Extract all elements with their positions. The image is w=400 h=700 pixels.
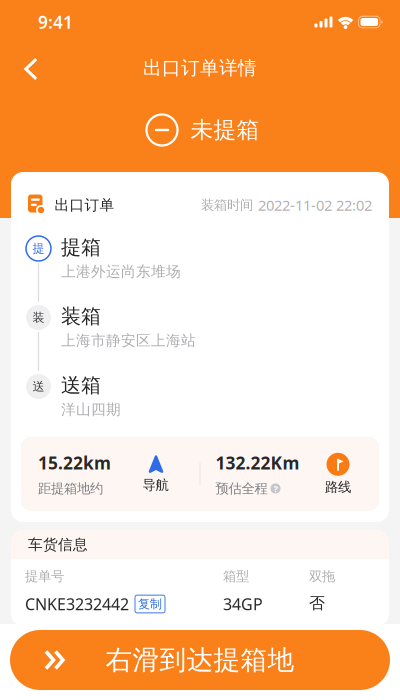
staticText: 双拖: [309, 568, 335, 584]
staticText: 车货信息: [28, 535, 88, 553]
staticText: 9:41: [38, 10, 73, 33]
staticText: 132.22Km: [215, 451, 299, 474]
staticText: 2022-11-02 22:02: [258, 195, 372, 215]
staticText: 上海市静安区上海站: [61, 332, 196, 350]
button[interactable]: 右滑到达提箱地: [10, 630, 390, 690]
staticText: 装箱时间: [201, 197, 253, 213]
staticText: 出口订单详情: [143, 56, 257, 79]
staticText: 导航: [142, 477, 168, 493]
staticText: 否: [309, 593, 325, 613]
staticText: 出口订单: [54, 196, 114, 214]
button[interactable]: 复制: [135, 595, 165, 613]
staticText: 提单号: [25, 568, 64, 584]
staticText: 路线: [325, 479, 351, 495]
staticText: 洋山四期: [61, 401, 121, 419]
staticText: 装: [32, 310, 44, 325]
staticText: 34GP: [223, 593, 263, 615]
staticText: ?: [273, 482, 277, 495]
staticText: 送箱: [61, 373, 101, 398]
staticText: 箱型: [223, 568, 249, 584]
staticText: 预估全程: [215, 480, 267, 497]
staticText: 右滑到达提箱地: [105, 644, 294, 676]
staticText: CNKE3232442: [25, 593, 129, 615]
staticText: 提箱: [61, 235, 101, 260]
staticText: 复制: [138, 597, 162, 611]
staticText: 距提箱地约: [38, 480, 103, 497]
button[interactable]: 路线: [323, 453, 353, 495]
button[interactable]: 导航: [140, 455, 170, 493]
staticText: 装箱: [61, 304, 101, 329]
button[interactable]: 返回: [0, 45, 52, 86]
staticText: 上港外运尚东堆场: [61, 263, 181, 281]
staticText: 提: [32, 241, 44, 256]
staticText: 未提箱: [190, 116, 259, 144]
staticText: 15.22km: [38, 451, 111, 474]
staticText: 送: [32, 379, 44, 394]
